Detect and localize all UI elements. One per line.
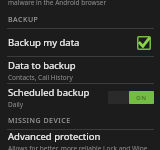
staticText: Allows for better, more reliable Lock an…: [8, 144, 148, 150]
staticText: Advanced protection: [8, 130, 101, 143]
staticText: Scheduled backup: [8, 86, 90, 99]
staticText: Daily: [8, 100, 24, 109]
button[interactable]: Advanced protection: [0, 130, 160, 150]
button[interactable]: Backup my data checkbox, checked: [134, 33, 154, 53]
button[interactable]: Scheduled backup: [0, 84, 160, 110]
staticText: BACKUP: [8, 15, 39, 25]
staticText: Contacts, Call History: [8, 73, 73, 82]
button[interactable]: Scheduled backup, on: [108, 91, 154, 104]
button[interactable]: Data to backup: [0, 57, 160, 83]
staticText: ON: [136, 94, 147, 102]
button[interactable]: Backup my data: [0, 29, 160, 56]
staticText: MISSING DEVICE: [8, 116, 71, 126]
staticText: Data to backup: [8, 59, 76, 72]
staticText: malware in the Android browser: [8, 0, 107, 7]
staticText: Backup my data: [8, 36, 80, 49]
